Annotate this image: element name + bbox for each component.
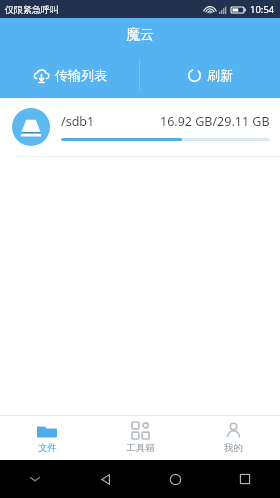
button[interactable]: Hide xyxy=(0,460,70,498)
staticText: 刷新 xyxy=(207,67,233,83)
button[interactable]: 文件 xyxy=(0,416,94,460)
button[interactable]: 我的 xyxy=(187,416,280,460)
staticText: 魔云 xyxy=(126,26,154,44)
button[interactable]: 传输列表 xyxy=(0,52,139,98)
button[interactable]: Recents xyxy=(210,460,280,498)
button[interactable]: Back xyxy=(70,460,140,498)
staticText: 仅限紧急呼叫 xyxy=(5,4,59,15)
staticText: 文件 xyxy=(38,442,57,454)
button[interactable]: 工具箱 xyxy=(94,416,187,460)
button[interactable]: Home xyxy=(140,460,210,498)
staticText: 我的 xyxy=(224,442,243,454)
staticText: 16.92 GB/29.11 GB xyxy=(160,113,270,130)
staticText: /sdb1 xyxy=(61,113,95,130)
staticText: 工具箱 xyxy=(126,442,155,454)
staticText: 传输列表 xyxy=(55,67,107,83)
staticText: 10:54 xyxy=(250,3,275,16)
button[interactable]: /sdb1 xyxy=(0,98,280,156)
button[interactable]: 刷新 xyxy=(140,52,280,98)
